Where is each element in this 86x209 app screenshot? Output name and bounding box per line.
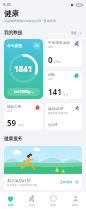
staticText: 59 [7,117,17,128]
staticText: 今日 [48,78,53,81]
staticText: 更多 [71,31,78,35]
button[interactable]: 今日步数 [4,39,43,99]
staticText: 1841 [14,63,33,74]
staticText: 今日 [7,110,12,113]
button[interactable]: 健康 [0,192,21,209]
staticText: 加入运动计划 [7,178,31,183]
button[interactable]: 目标10000步 [7,88,40,96]
staticText: 消耗 [48,73,56,78]
staticText: 今日步数 [7,43,23,48]
staticText: 静息心率 [7,105,22,110]
staticText: 9:41 [3,2,11,7]
button[interactable]: 我的 [64,192,86,209]
staticText: 科学健身，养成运动好习惯 [7,184,37,187]
staticText: 运动 [29,203,35,207]
button[interactable]: 静息心率 [4,103,43,130]
staticText: 141 [48,86,62,97]
staticText: 查看历史运动记录 [48,112,68,115]
staticText: 健康 [4,9,19,18]
button[interactable]: 发现 [42,192,64,209]
staticText: 发现 [50,203,56,207]
staticText: 运动记录 [48,106,64,111]
button[interactable]: 中高强度运动 [45,39,82,67]
button[interactable]: 运动 [21,192,42,209]
staticText: 千卡 [63,93,69,96]
staticText: 我的 [72,203,78,207]
button[interactable]: 同步数据 [33,42,40,49]
staticText: 本周 [48,46,53,49]
staticText: 我的数据 [4,30,23,36]
button[interactable]: 立即参加 [60,180,73,184]
staticText: 健康服务 [4,136,23,142]
staticText: 运动健康数据已同步至云端 · 查看详情 [4,19,56,23]
staticText: 去记录 [48,123,58,127]
button[interactable]: 运动记录 [45,103,82,130]
staticText: 次/分 [18,123,25,127]
staticText: 健康 [8,203,14,207]
staticText: 时0分 [54,60,61,64]
staticText: 0 [48,54,53,65]
button[interactable]: 消耗 [45,71,82,99]
staticText: 中高强度运动 [48,41,70,46]
button[interactable]: 加入运动计划 [4,146,82,190]
button[interactable]: 更多 [71,31,82,35]
staticText: 目标10000步 [14,90,31,94]
